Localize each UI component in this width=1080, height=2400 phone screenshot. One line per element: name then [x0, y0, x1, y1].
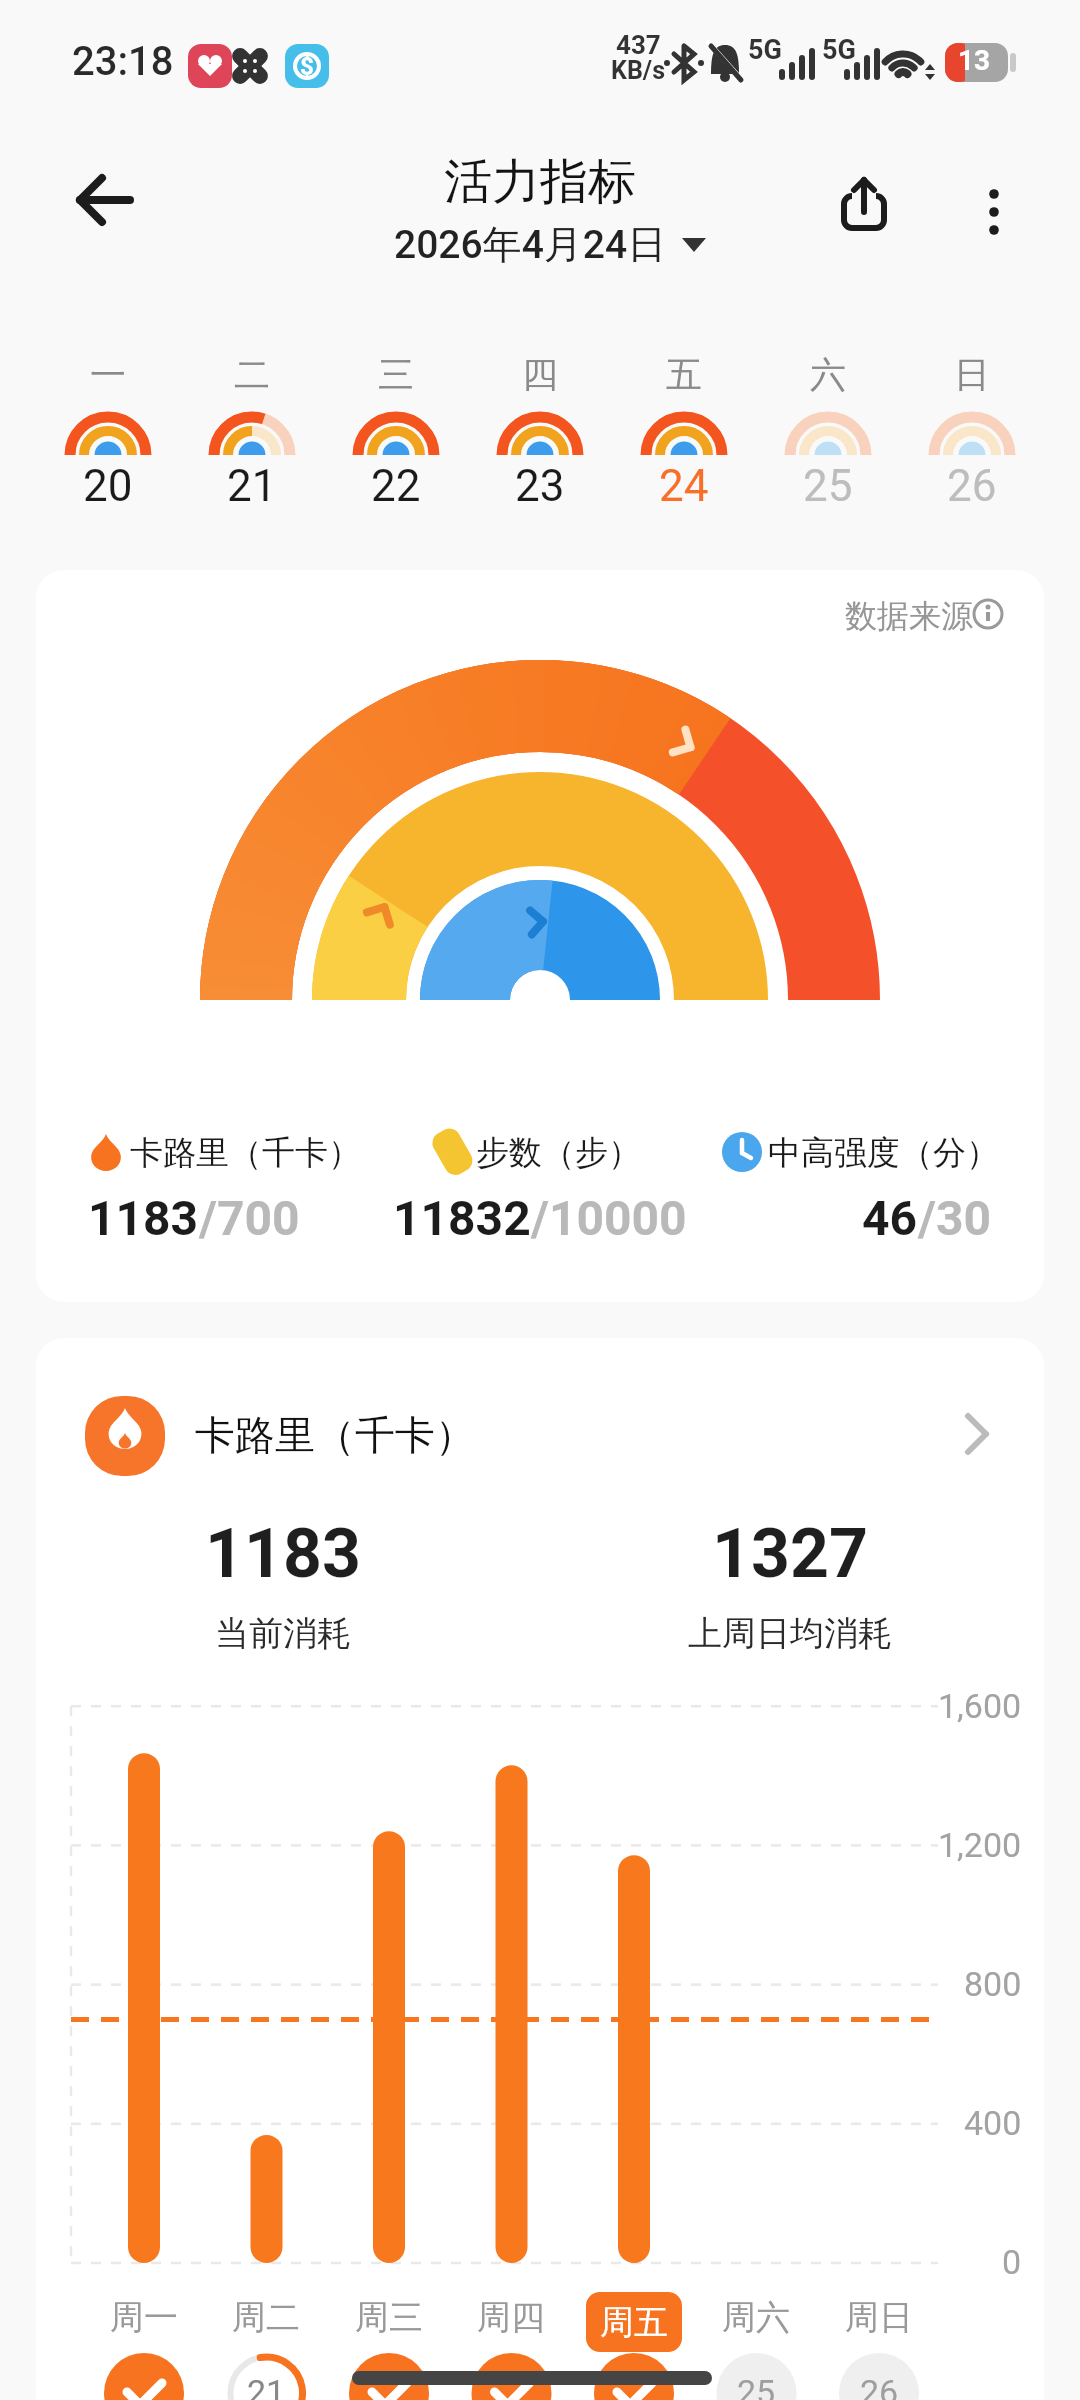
staticText: 24	[659, 460, 709, 512]
staticText: 437	[616, 30, 661, 60]
staticText: 三	[378, 352, 414, 397]
button[interactable]	[612, 340, 756, 520]
staticText: 2026年4月24日	[394, 220, 667, 269]
staticText: 23:18	[72, 38, 174, 85]
staticText: 23	[515, 460, 565, 512]
staticText: 周六	[722, 2296, 790, 2339]
staticText: 5G	[822, 34, 856, 66]
button[interactable]	[756, 340, 900, 520]
button[interactable]	[324, 340, 468, 520]
staticText: 1183	[205, 1514, 362, 1594]
staticText: 中高强度（分）	[768, 1132, 999, 1174]
staticText: 周四	[477, 2296, 545, 2339]
staticText: $	[300, 52, 314, 80]
staticText: 卡路里（千卡）	[195, 1410, 475, 1460]
staticText: 活力指标	[444, 152, 636, 212]
staticText: 周三	[355, 2296, 423, 2339]
staticText: 22	[371, 460, 421, 512]
staticText: 周一	[110, 2296, 178, 2339]
staticText: 一	[90, 352, 126, 397]
staticText: 5G	[748, 34, 782, 66]
staticText: 周日	[845, 2296, 913, 2339]
staticText: 25	[803, 460, 853, 512]
staticText: 周五	[600, 2301, 668, 2344]
staticText: 11832	[393, 1190, 531, 1246]
staticText: 四	[522, 352, 558, 397]
button[interactable]	[962, 170, 1030, 240]
button[interactable]	[900, 340, 1044, 520]
staticText: /700	[199, 1190, 300, 1246]
button[interactable]	[36, 570, 1044, 1302]
staticText: 数据来源	[845, 596, 973, 636]
staticText: 800	[964, 1964, 1022, 2004]
staticText: 1,600	[938, 1686, 1022, 1726]
staticText: 1183	[88, 1190, 199, 1246]
staticText: KB/s	[611, 56, 666, 85]
staticText: 21	[247, 2372, 286, 2400]
button[interactable]	[36, 340, 180, 520]
staticText: 400	[964, 2103, 1022, 2143]
staticText: 日	[954, 352, 990, 397]
staticText: 21	[227, 460, 277, 512]
staticText: 五	[666, 352, 702, 397]
button[interactable]	[468, 340, 612, 520]
staticText: 46	[862, 1190, 918, 1246]
staticText: 1,200	[938, 1825, 1022, 1865]
button[interactable]	[60, 1380, 1010, 1490]
button[interactable]	[300, 215, 780, 275]
staticText: 25	[737, 2372, 776, 2400]
staticText: 二	[234, 352, 270, 397]
button[interactable]	[180, 340, 324, 520]
staticText: 26	[947, 460, 997, 512]
staticText: /10000	[531, 1190, 687, 1246]
staticText: 周二	[232, 2296, 300, 2339]
staticText: 上周日均消耗	[688, 1612, 892, 1655]
staticText: 1327	[712, 1514, 869, 1594]
staticText: 当前消耗	[215, 1612, 351, 1655]
staticText: 六	[810, 352, 846, 397]
button[interactable]	[60, 166, 144, 236]
staticText: 26	[860, 2372, 899, 2400]
staticText: 卡路里（千卡）	[130, 1132, 361, 1174]
staticText: 0	[1002, 2242, 1022, 2282]
button[interactable]	[36, 1338, 1044, 2400]
staticText: 20	[83, 460, 133, 512]
button[interactable]: 周五	[586, 2292, 682, 2352]
staticText: 13	[958, 44, 991, 77]
staticText: /30	[918, 1190, 992, 1246]
button[interactable]	[830, 170, 900, 240]
staticText: 步数（步）	[476, 1132, 641, 1174]
